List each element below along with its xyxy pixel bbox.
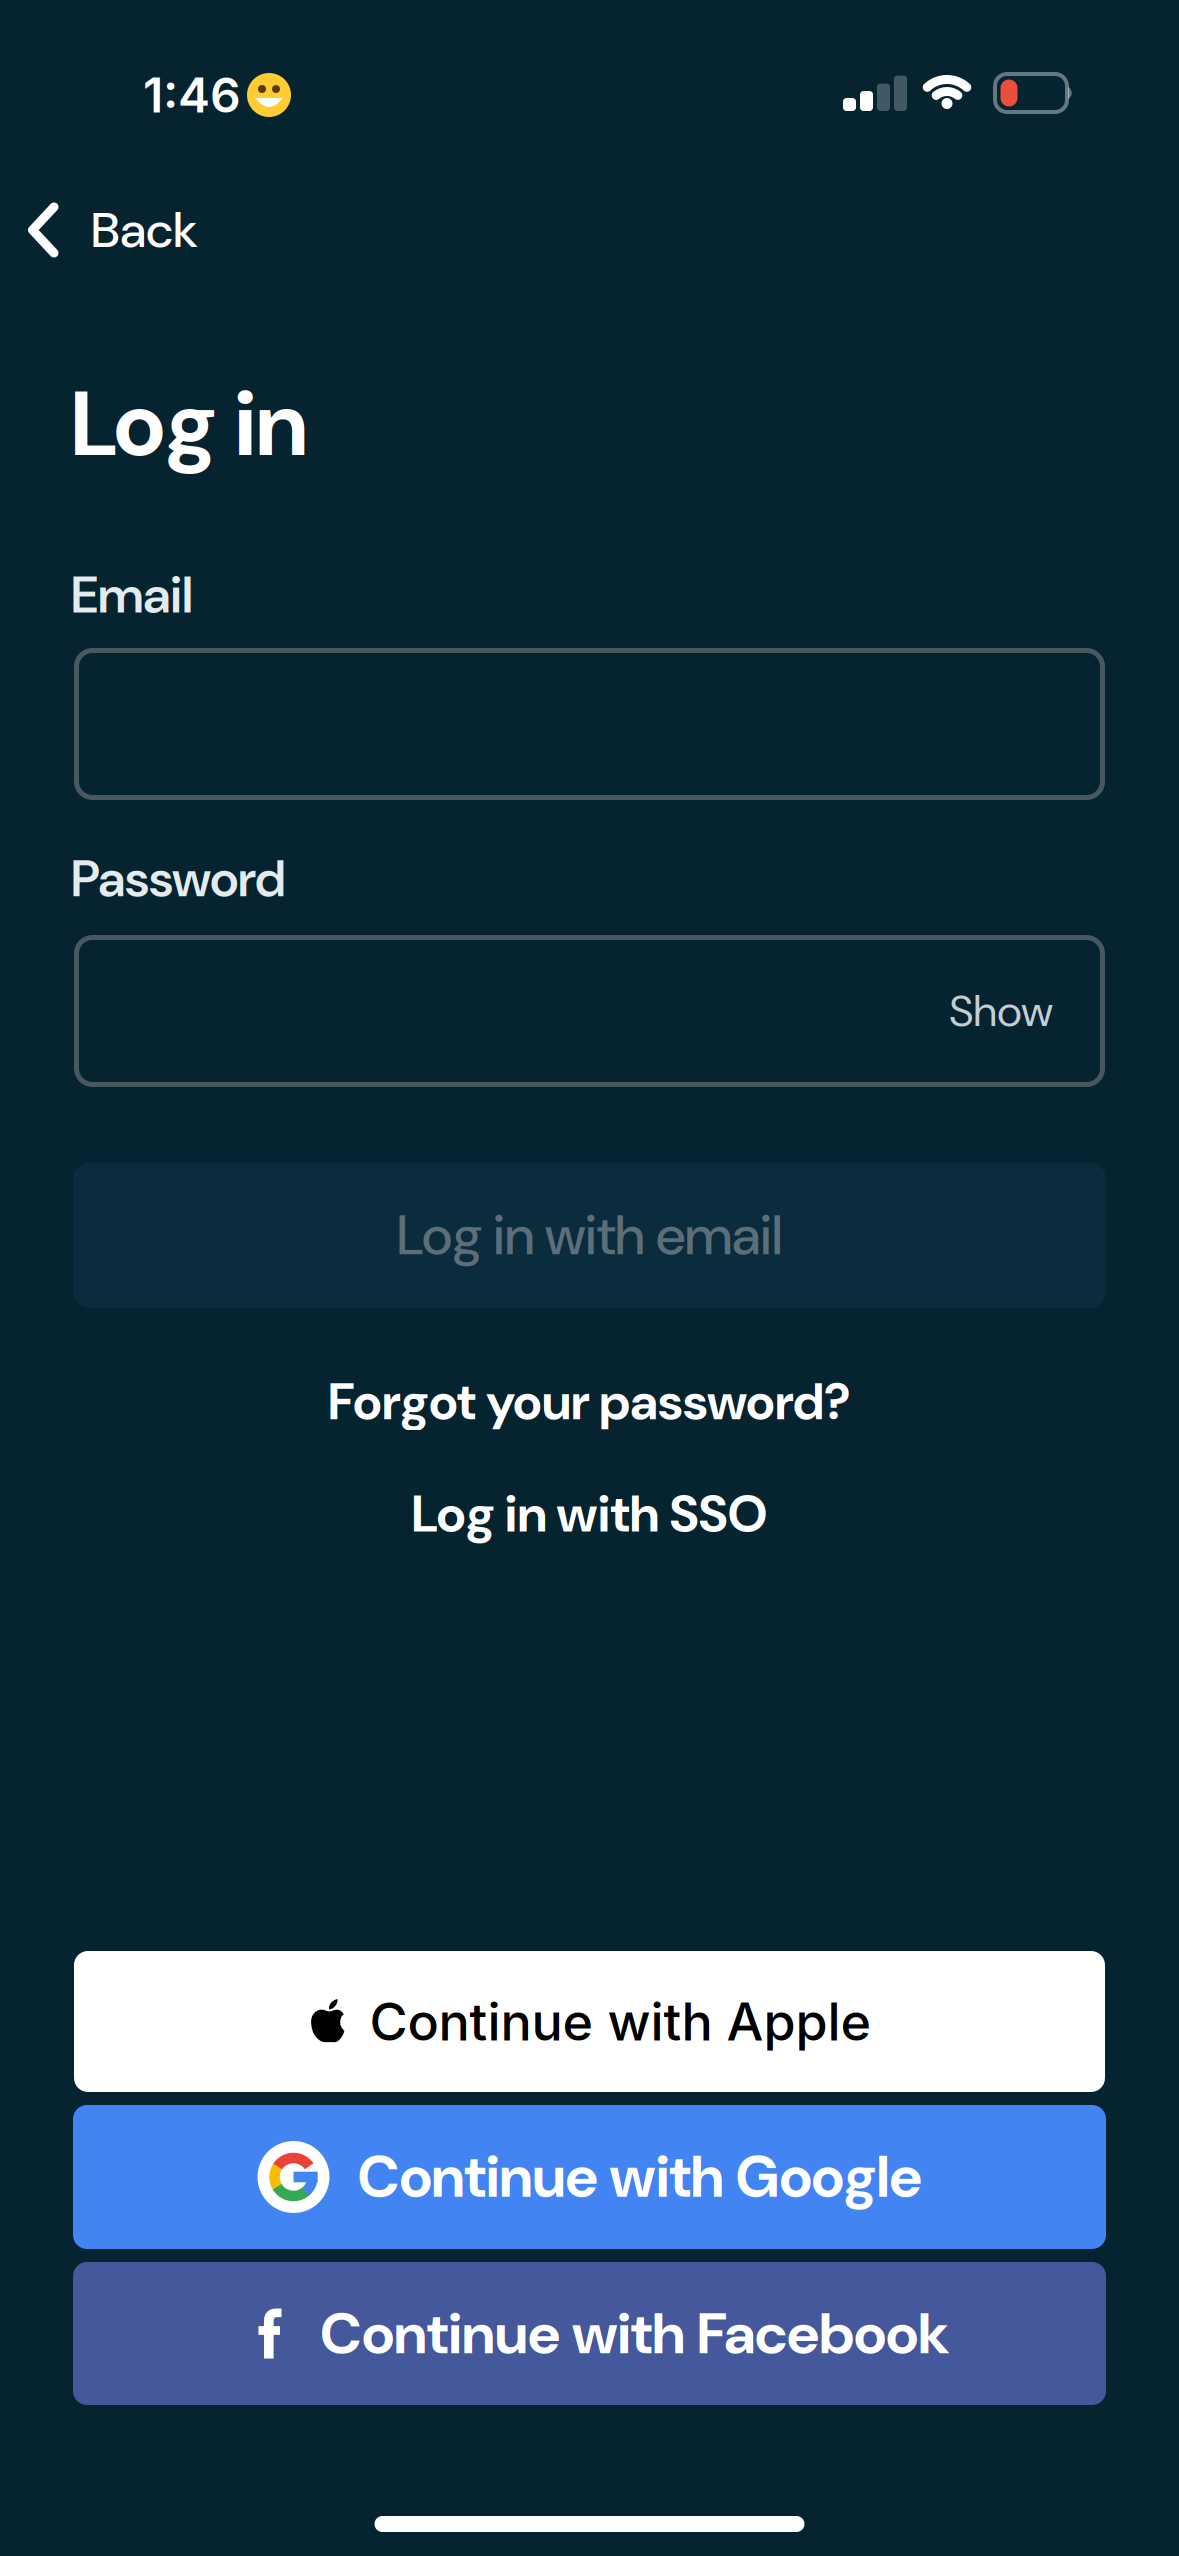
staticText: Continue with Apple (369, 1990, 871, 2053)
staticText: Password (71, 846, 286, 912)
staticText: Log in (71, 365, 307, 483)
button[interactable]: Show (949, 982, 1053, 1040)
staticText: Back (91, 197, 198, 262)
button[interactable]: Forgot your password? (328, 1369, 851, 1435)
staticText: Continue with Facebook (320, 2296, 950, 2371)
staticText: 1:46 (143, 66, 241, 124)
staticText: Email (71, 562, 193, 628)
button[interactable]: Continue with Facebook (73, 2262, 1106, 2405)
staticText: Log in with SSO (411, 1480, 767, 1548)
button[interactable]: Log in with email (73, 1163, 1106, 1308)
button[interactable] (74, 935, 1105, 1087)
button[interactable]: Continue with Google (73, 2105, 1106, 2249)
button[interactable]: Back (28, 197, 198, 262)
button[interactable]: Log in with SSO (411, 1480, 767, 1548)
button[interactable]: Continue with Apple (74, 1951, 1105, 2092)
staticText: Continue with Google (357, 2139, 921, 2215)
staticText: Forgot your password? (328, 1369, 851, 1435)
staticText: Show (949, 982, 1053, 1040)
staticText: Log in with email (397, 1200, 782, 1271)
button[interactable] (74, 648, 1105, 800)
